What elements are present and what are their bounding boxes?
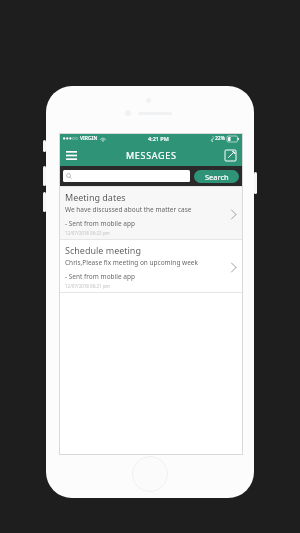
staticText: Chris,Please fix meeting on upcoming wee… (65, 258, 198, 267)
button[interactable] (63, 170, 190, 182)
staticText: Schedule meeting (65, 244, 141, 256)
staticText: 4:21 PM (148, 135, 169, 142)
staticText: We have discussed about the matter case (65, 205, 192, 214)
button[interactable]: Compose message (222, 147, 238, 163)
staticText: 22% (215, 135, 225, 142)
button[interactable]: Schedule meeting (59, 240, 243, 292)
button[interactable]: Menu (63, 147, 79, 163)
staticText: - Sent from mobile app (65, 219, 135, 228)
staticText: Search (205, 172, 229, 182)
button[interactable]: Search (194, 170, 239, 183)
staticText: MESSAGES (126, 149, 177, 161)
staticText: 12/07/2018 06:22 pm (65, 230, 110, 236)
staticText: Meeting dates (65, 191, 126, 203)
staticText: - Sent from mobile app (65, 272, 135, 281)
staticText: 12/07/2018 06:21 pm (65, 283, 110, 289)
button[interactable]: Meeting dates (59, 187, 243, 239)
staticText: VIRGIN (80, 135, 98, 142)
